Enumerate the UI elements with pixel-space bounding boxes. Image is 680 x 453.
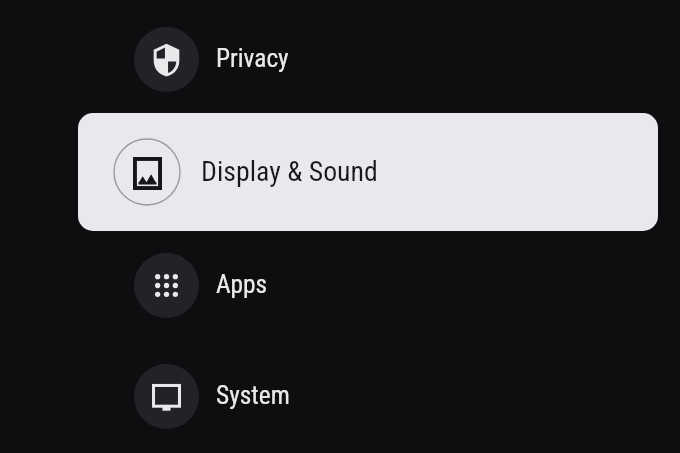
other: Display & Sound icon (113, 138, 181, 206)
staticText: Apps (216, 269, 268, 299)
button[interactable]: Display & Sound icon (78, 113, 658, 231)
other: Apps icon (134, 253, 199, 318)
button[interactable]: Privacy icon (24, 4, 656, 114)
staticText: System (216, 380, 290, 410)
button[interactable]: System icon (24, 341, 656, 451)
button[interactable]: Apps icon (24, 230, 656, 340)
other: Privacy icon (134, 27, 199, 92)
staticText: Privacy (216, 43, 289, 73)
other: System icon (134, 364, 199, 429)
staticText: Display & Sound (201, 155, 378, 188)
